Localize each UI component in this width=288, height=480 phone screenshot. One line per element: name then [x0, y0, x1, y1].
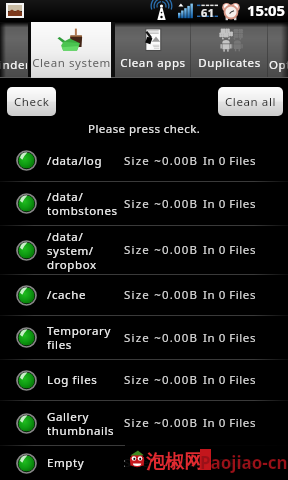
button[interactable]: /data/ system/ dropbox — [0, 226, 288, 274]
staticText: inder — [0, 57, 27, 73]
staticText: In 0 Files — [203, 242, 256, 258]
button[interactable]: Log files — [0, 360, 288, 400]
staticText: Size ~0.00B — [124, 287, 199, 303]
button[interactable]: /cache — [0, 275, 288, 315]
staticText: /data/ system/ dropbox — [47, 229, 97, 272]
staticText: 61 — [201, 5, 215, 20]
staticText: In 0 Files — [203, 415, 256, 431]
staticText: Size ~0.00B — [124, 196, 199, 212]
staticText: In 0 Files — [203, 196, 256, 212]
button[interactable]: Clean system — [31, 22, 111, 77]
staticText: Size ~0.00B — [124, 330, 199, 346]
staticText: In 0 Files — [203, 287, 256, 303]
staticText: Size ~0.00B — [124, 372, 199, 388]
button[interactable]: /data/ tombstones — [0, 182, 288, 225]
button[interactable]: inder — [0, 22, 28, 77]
staticText: Clean apps — [120, 55, 186, 71]
button[interactable]: /data/log — [0, 140, 288, 181]
staticText: Check — [14, 94, 50, 110]
button[interactable]: Clean all — [218, 87, 283, 116]
staticText: 泡椒网 — [146, 450, 203, 474]
button[interactable]: Clean apps — [115, 22, 190, 77]
staticText: In 0 Files — [203, 153, 256, 169]
staticText: 15:05 — [247, 0, 286, 20]
staticText: Size ~0.00B — [124, 242, 199, 258]
staticText: Opt — [269, 57, 288, 73]
staticText: /data/ tombstones — [47, 189, 118, 218]
button[interactable]: Opt — [268, 22, 288, 77]
button[interactable]: Empty — [0, 446, 288, 480]
staticText: Size ~0.00B — [124, 415, 199, 431]
staticText: Gallery thumbnails — [47, 409, 115, 438]
staticText: Temporary files — [47, 323, 111, 352]
staticText: /cache — [47, 287, 86, 303]
staticText: Clean all — [225, 94, 277, 110]
button[interactable]: Temporary files — [0, 316, 288, 359]
staticText: In 0 Files — [203, 372, 256, 388]
button[interactable]: Duplicates — [191, 22, 267, 77]
staticText: /data/log — [47, 153, 103, 169]
staticText: Duplicates — [198, 55, 261, 71]
staticText: Size ~0.00B — [124, 455, 199, 471]
staticText: Log files — [47, 372, 98, 388]
staticText: In 0 Files — [203, 455, 256, 471]
staticText: Size ~0.00B — [124, 153, 199, 169]
staticText: In 0 Files — [203, 330, 256, 346]
button[interactable]: Gallery thumbnails — [0, 401, 288, 445]
staticText: Paojiao-cn — [200, 451, 288, 474]
staticText: Empty — [47, 455, 85, 471]
staticText: Clean system — [32, 55, 111, 71]
staticText: Please press check. — [88, 121, 201, 137]
button[interactable]: Check — [7, 87, 56, 116]
